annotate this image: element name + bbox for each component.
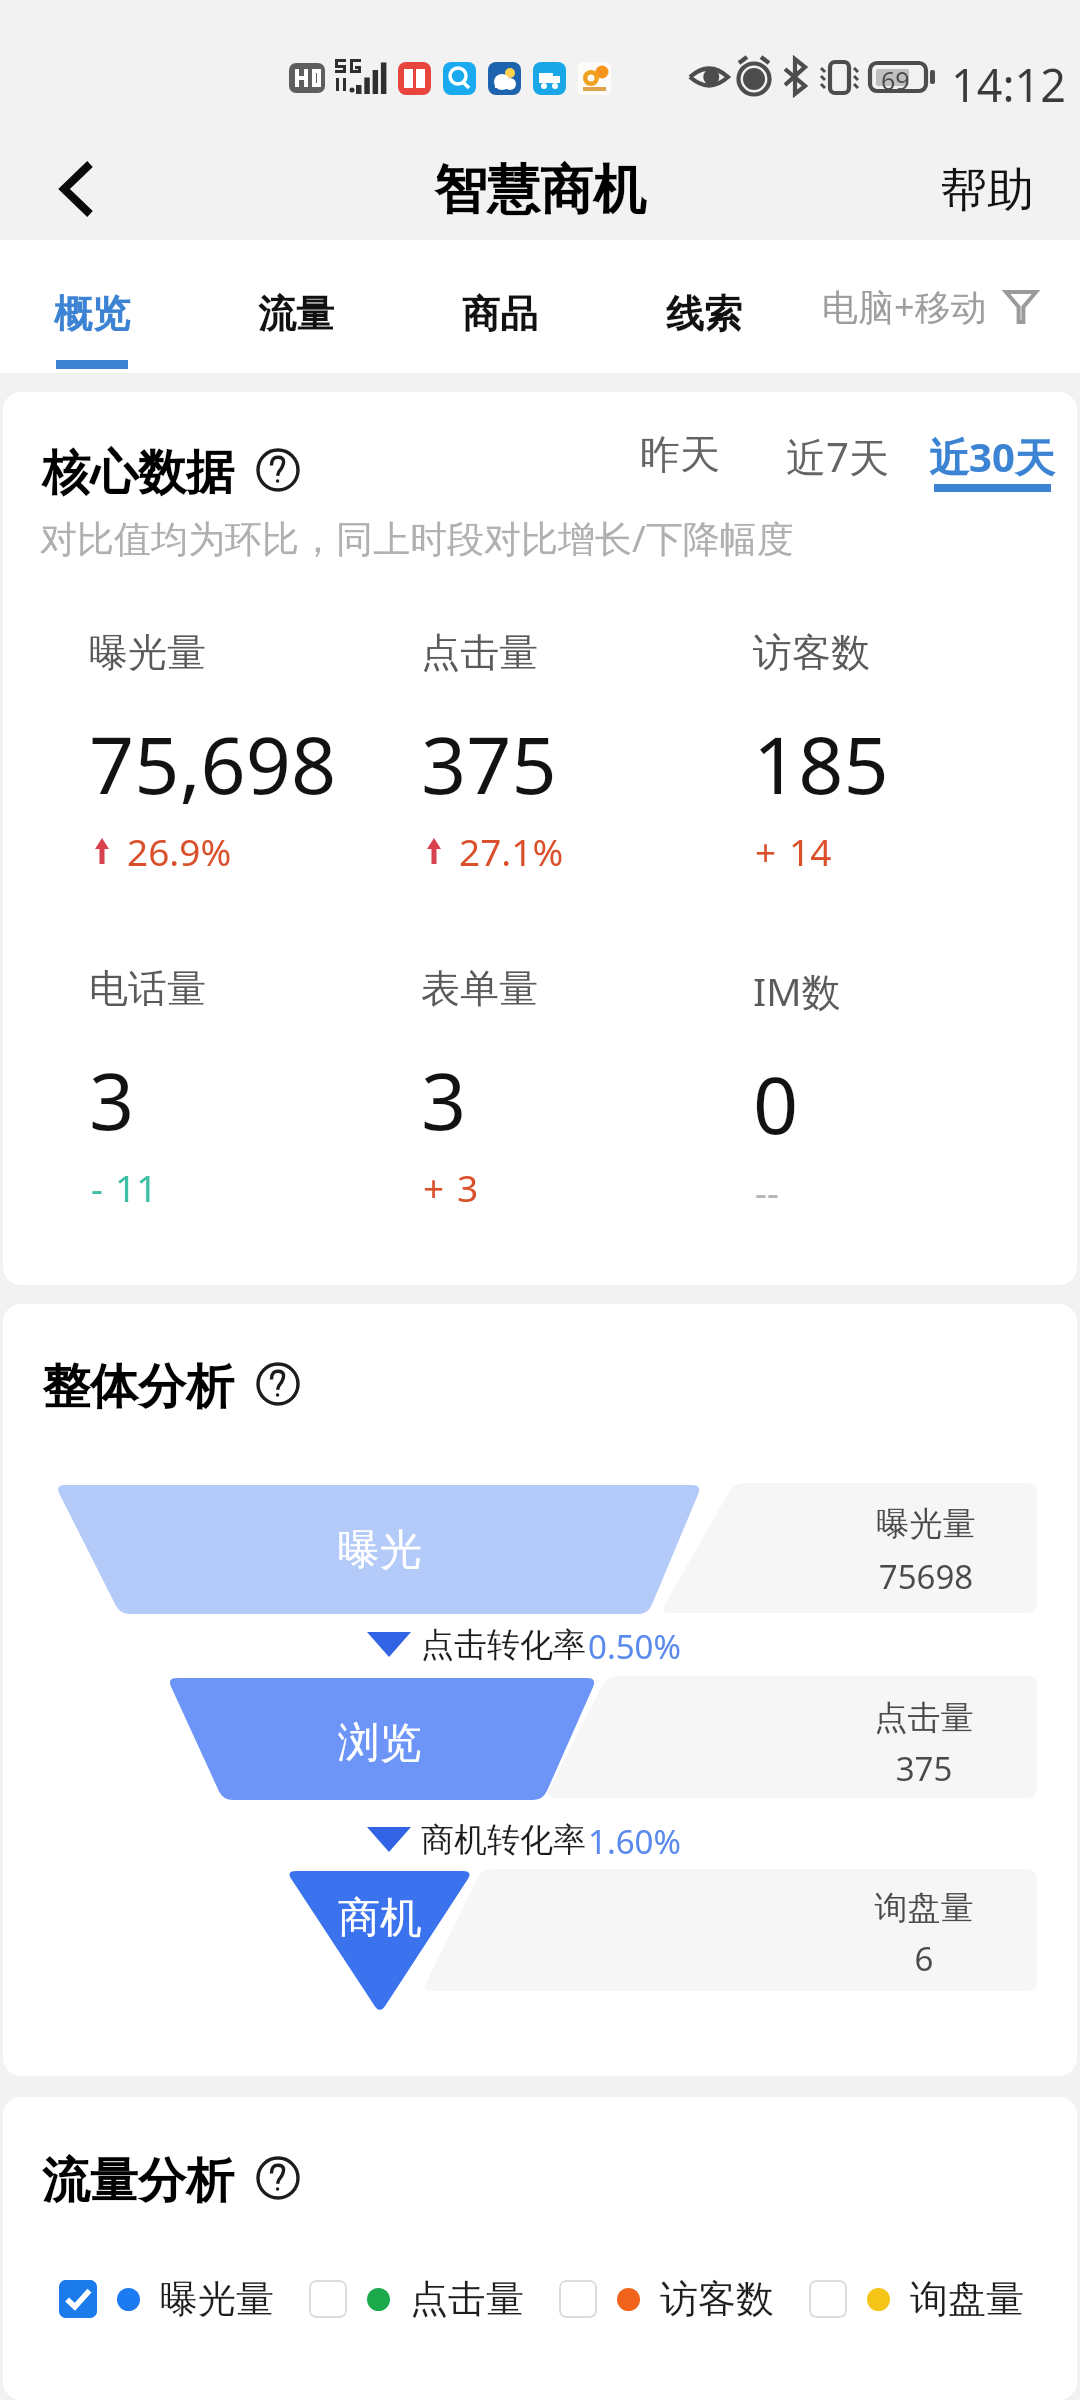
staticText: 概览 <box>54 290 130 338</box>
staticText: 曝光 <box>280 1524 480 1577</box>
button[interactable]: 电脑+移动 <box>822 240 1080 373</box>
staticText: 75,698 <box>89 710 337 818</box>
staticText: 185 <box>753 710 889 818</box>
button[interactable]: 曝光量 <box>89 628 421 876</box>
button[interactable]: 曝光量 <box>59 2275 274 2323</box>
button[interactable]: 访客数 <box>753 628 1077 876</box>
staticText: + <box>755 826 777 876</box>
staticText: 69 <box>881 63 910 97</box>
staticText: 电话量 <box>89 964 206 1013</box>
staticText: 电脑+移动 <box>822 282 987 331</box>
staticText: IM数 <box>753 964 841 1017</box>
staticText: 商机 <box>280 1892 480 1945</box>
button[interactable]: 近7天 <box>786 429 889 492</box>
button[interactable]: 点击量 <box>309 2275 524 2323</box>
staticText: 线索 <box>666 290 742 338</box>
staticText: 核心数据 <box>42 443 234 503</box>
button[interactable]: 近30天 <box>929 429 1055 492</box>
staticText: 询盘量 <box>824 1887 1024 1929</box>
staticText: 近7天 <box>786 429 889 484</box>
staticText: 流量分析 <box>42 2151 234 2211</box>
staticText: 帮助 <box>940 161 1034 220</box>
button[interactable]: 流量 <box>194 240 398 373</box>
staticText: 对比值均为环比，同上时段对比增长/下降幅度 <box>40 512 794 563</box>
button[interactable]: 线索 <box>602 240 806 373</box>
staticText: 11 <box>115 1162 158 1212</box>
staticText: 近30天 <box>929 429 1055 484</box>
staticText: 整体分析 <box>42 1357 234 1417</box>
staticText: 1.60% <box>588 1819 748 1864</box>
button[interactable]: 访客数 <box>559 2275 774 2323</box>
staticText: 3 <box>421 1046 467 1154</box>
staticText: 曝光量 <box>160 2275 274 2323</box>
button[interactable]: 询盘量 <box>809 2275 1024 2323</box>
staticText: 6 <box>824 1936 1024 1981</box>
button[interactable]: 帮助 <box>900 147 1074 234</box>
staticText: 375 <box>824 1746 1024 1791</box>
button[interactable]: 概览 <box>0 240 194 373</box>
staticText: - <box>91 1162 103 1212</box>
button[interactable]: 点击量 <box>421 628 753 876</box>
staticText: 3 <box>89 1046 135 1154</box>
staticText: 表单量 <box>421 964 538 1013</box>
staticText: 点击转化率 <box>421 1624 681 1666</box>
staticText: 27.1% <box>459 826 564 876</box>
staticText: 点击量 <box>421 628 538 677</box>
button[interactable]: Back <box>28 140 126 238</box>
button[interactable]: 商品 <box>398 240 602 373</box>
button[interactable]: 昨天 <box>640 429 720 487</box>
staticText: 智慧商机 <box>434 157 646 224</box>
staticText: 26.9% <box>127 826 232 876</box>
staticText: 访客数 <box>660 2275 774 2323</box>
staticText: 375 <box>421 710 557 818</box>
staticText: 14 <box>789 826 832 876</box>
button[interactable]: 表单量 <box>421 964 753 1212</box>
staticText: 曝光量 <box>89 628 206 677</box>
staticText: 商机转化率 <box>421 1819 681 1861</box>
staticText: 75698 <box>826 1554 1026 1599</box>
staticText: 曝光量 <box>826 1503 1026 1545</box>
staticText: 流量 <box>258 290 334 338</box>
staticText: -- <box>755 1166 779 1216</box>
staticText: 0 <box>753 1050 799 1158</box>
staticText: 0.50% <box>588 1624 748 1669</box>
staticText: 商品 <box>462 290 538 338</box>
staticText: 访客数 <box>753 628 870 677</box>
staticText: + <box>423 1162 445 1212</box>
staticText: 3 <box>457 1162 479 1212</box>
staticText: 浏览 <box>280 1717 480 1770</box>
button[interactable]: 电话量 <box>89 964 421 1212</box>
staticText: 点击量 <box>410 2275 524 2323</box>
staticText: 14:12 <box>951 54 1067 115</box>
staticText: 昨天 <box>640 429 720 479</box>
button[interactable]: IM数 <box>753 964 1077 1216</box>
staticText: 询盘量 <box>910 2275 1024 2323</box>
staticText: 点击量 <box>824 1697 1024 1739</box>
